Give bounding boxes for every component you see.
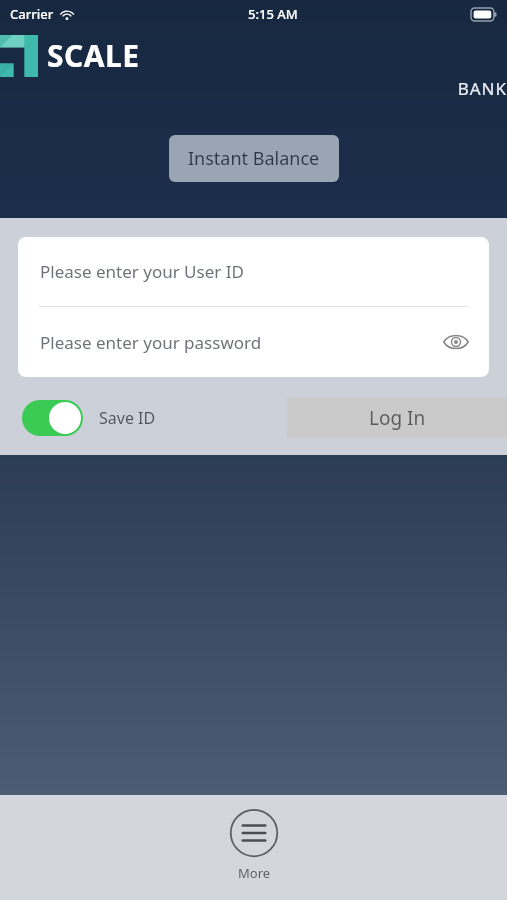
button[interactable]: Please enter your password	[18, 307, 489, 377]
staticText: Carrier	[10, 5, 54, 23]
staticText: 5:15 AM	[248, 5, 298, 23]
staticText: BANK	[47, 77, 507, 100]
button[interactable]: More	[229, 808, 279, 882]
staticText: Please enter your password	[40, 331, 262, 354]
button[interactable]: Show password	[439, 325, 473, 359]
button[interactable]: Please enter your User ID	[18, 237, 489, 306]
staticText: Instant Balance	[188, 146, 320, 171]
staticText: Save ID	[99, 407, 156, 429]
staticText: More	[238, 864, 271, 882]
button[interactable]: Log In	[287, 398, 507, 438]
staticText: Please enter your User ID	[40, 260, 244, 283]
staticText: SCALE	[47, 35, 140, 76]
button[interactable]: Save ID toggle	[22, 400, 83, 436]
button[interactable]: Instant Balance	[169, 135, 339, 182]
staticText: Log In	[369, 405, 426, 431]
